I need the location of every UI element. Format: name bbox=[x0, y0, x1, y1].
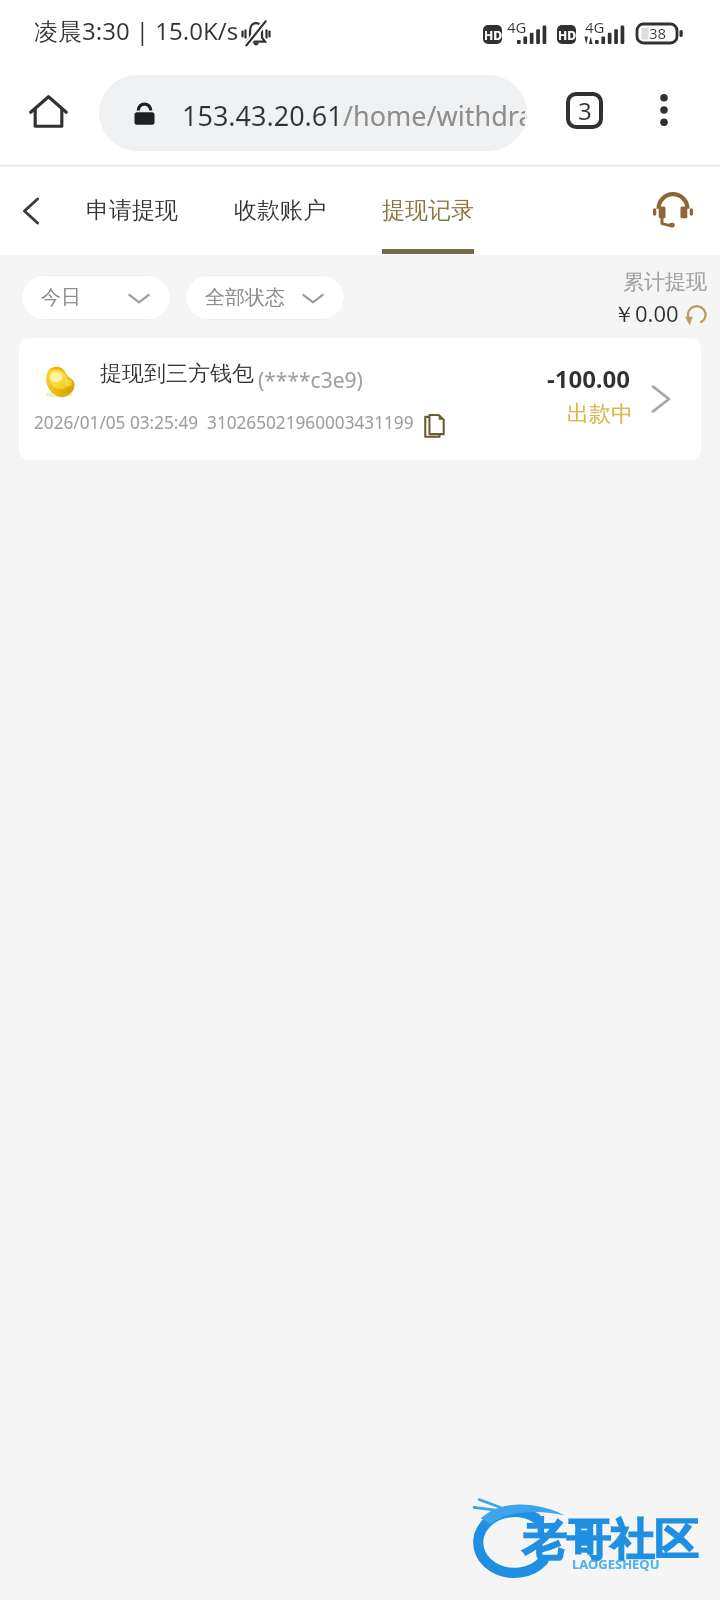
button[interactable]: Copy order number bbox=[419, 411, 449, 441]
button[interactable]: More options bbox=[636, 82, 692, 138]
staticText: 老哥社区 bbox=[522, 1513, 698, 1568]
staticText: 4G bbox=[585, 17, 605, 37]
staticText: (****c3e9) bbox=[258, 366, 363, 395]
button[interactable]: 今日 bbox=[21, 275, 171, 320]
button[interactable]: Back bbox=[2, 182, 60, 240]
staticText: HD bbox=[558, 27, 576, 43]
staticText: 申请提现 bbox=[86, 196, 178, 225]
button[interactable]: 153.43.20.61 bbox=[99, 75, 527, 151]
staticText: 今日 bbox=[41, 285, 81, 310]
button[interactable]: 提现记录 bbox=[372, 167, 484, 255]
staticText: 提现到三方钱包 bbox=[100, 360, 254, 388]
button[interactable]: Home bbox=[20, 83, 76, 139]
staticText: LAOGESHEQU bbox=[572, 1555, 660, 1573]
staticText: 2026/01/05 03:25:49 31026502196000343119… bbox=[34, 411, 414, 434]
button[interactable]: Tabs bbox=[556, 82, 612, 138]
button[interactable]: 收款账户 bbox=[224, 167, 336, 255]
button[interactable]: 全部状态 bbox=[185, 275, 345, 320]
staticText: 收款账户 bbox=[234, 196, 326, 225]
staticText: 累计提现 bbox=[623, 269, 707, 295]
staticText: 出款中 bbox=[567, 400, 633, 428]
staticText: -100.00 bbox=[547, 362, 631, 395]
staticText: 全部状态 bbox=[205, 285, 285, 310]
staticText: HD bbox=[484, 27, 502, 43]
button[interactable]: Customer service bbox=[643, 180, 703, 240]
staticText: 提现记录 bbox=[382, 196, 474, 225]
button[interactable]: Refresh bbox=[682, 301, 710, 329]
staticText: 38 bbox=[649, 23, 667, 43]
staticText: 4G bbox=[507, 17, 527, 37]
staticText: 153.43.20.61 bbox=[182, 97, 343, 134]
button[interactable]: 申请提现 bbox=[76, 167, 188, 255]
staticText: 3 bbox=[578, 94, 592, 127]
button[interactable]: 提现到三方钱包 bbox=[19, 338, 701, 460]
staticText: 凌晨3:30 | 15.0K/s bbox=[34, 14, 239, 47]
staticText: /home/withdraw bbox=[343, 97, 527, 134]
staticText: ￥0.00 bbox=[613, 298, 679, 328]
